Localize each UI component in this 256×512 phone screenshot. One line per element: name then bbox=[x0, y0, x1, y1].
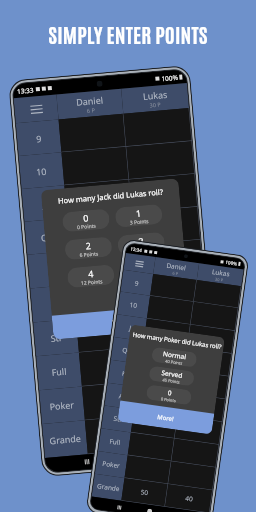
button[interactable]: Qu bbox=[111, 337, 144, 364]
button[interactable]: Grande bbox=[92, 474, 124, 501]
button[interactable]: Home bbox=[129, 454, 137, 462]
button[interactable] bbox=[141, 307, 209, 347]
button[interactable]: 2 bbox=[64, 236, 113, 260]
button[interactable]: Grande bbox=[42, 420, 88, 458]
button[interactable]: Served bbox=[148, 365, 195, 386]
button[interactable] bbox=[137, 364, 184, 393]
staticText: 10 bbox=[129, 300, 138, 310]
button[interactable] bbox=[123, 108, 192, 147]
staticText: 3 Points bbox=[130, 218, 149, 227]
button[interactable] bbox=[190, 302, 238, 331]
button[interactable]: Normal bbox=[151, 347, 198, 368]
button[interactable]: 0 bbox=[146, 384, 192, 405]
button[interactable]: Home bbox=[147, 508, 152, 512]
button[interactable]: Recents bbox=[83, 458, 91, 466]
button[interactable] bbox=[168, 461, 216, 490]
button[interactable]: K bbox=[27, 251, 73, 288]
button[interactable]: Daniel bbox=[153, 257, 199, 280]
staticText: A bbox=[118, 391, 124, 401]
button[interactable] bbox=[178, 393, 225, 422]
button[interactable]: 10 bbox=[19, 152, 64, 189]
button[interactable] bbox=[150, 274, 197, 302]
staticText: Daniel bbox=[76, 93, 103, 108]
button[interactable]: 0 bbox=[62, 208, 110, 232]
button[interactable] bbox=[131, 410, 178, 438]
button[interactable] bbox=[181, 370, 229, 399]
button[interactable]: A bbox=[104, 383, 137, 410]
button[interactable]: Full bbox=[36, 352, 82, 390]
button[interactable] bbox=[187, 325, 235, 354]
button[interactable]: 1 bbox=[114, 204, 163, 228]
button[interactable] bbox=[64, 179, 132, 218]
staticText: J bbox=[42, 198, 46, 210]
button[interactable]: J bbox=[21, 185, 67, 222]
button[interactable]: Qu bbox=[24, 218, 70, 255]
button[interactable]: Menu bbox=[123, 253, 156, 274]
button[interactable]: K bbox=[108, 360, 140, 387]
staticText: 1 bbox=[135, 206, 142, 219]
staticText: 30 P bbox=[215, 277, 224, 283]
staticText: Served bbox=[161, 368, 183, 380]
button[interactable]: Full bbox=[98, 428, 131, 455]
button[interactable] bbox=[129, 174, 198, 212]
button[interactable] bbox=[140, 341, 187, 370]
button[interactable]: A bbox=[30, 285, 76, 322]
staticText: Full bbox=[109, 436, 121, 447]
button[interactable] bbox=[79, 347, 147, 386]
button[interactable]: J bbox=[114, 314, 147, 341]
staticText: 0 Points bbox=[160, 396, 177, 403]
button[interactable]: 9 bbox=[16, 119, 61, 156]
button[interactable]: 5 bbox=[119, 260, 168, 284]
button[interactable] bbox=[147, 296, 194, 325]
staticText: 0 Points bbox=[77, 223, 96, 231]
staticText: J bbox=[129, 323, 132, 332]
button[interactable] bbox=[135, 239, 203, 279]
button[interactable] bbox=[150, 409, 218, 448]
button[interactable]: Lukas bbox=[121, 83, 189, 114]
button[interactable]: Poker bbox=[39, 386, 85, 424]
button[interactable] bbox=[138, 273, 206, 313]
staticText: 4 bbox=[88, 267, 95, 279]
staticText: 100% bbox=[225, 259, 238, 266]
button[interactable] bbox=[70, 245, 138, 285]
button[interactable] bbox=[61, 147, 129, 185]
button[interactable] bbox=[144, 341, 212, 381]
button[interactable]: Menu bbox=[14, 94, 59, 123]
button[interactable] bbox=[128, 432, 174, 461]
button[interactable]: 9 bbox=[120, 270, 153, 296]
button[interactable] bbox=[126, 141, 195, 179]
button[interactable]: More! bbox=[52, 304, 191, 340]
button[interactable] bbox=[134, 387, 181, 416]
button[interactable]: Str bbox=[33, 319, 79, 356]
button[interactable]: More! bbox=[117, 401, 214, 435]
button[interactable] bbox=[144, 318, 190, 347]
button[interactable] bbox=[59, 114, 126, 152]
button[interactable]: 40 bbox=[165, 484, 213, 512]
button[interactable] bbox=[184, 347, 232, 376]
staticText: 6 Points bbox=[79, 250, 99, 259]
staticText: 12:34 bbox=[130, 246, 143, 253]
button[interactable]: Recents bbox=[116, 504, 122, 510]
button[interactable]: Str bbox=[101, 405, 134, 432]
button[interactable]: Poker bbox=[95, 451, 128, 478]
button[interactable] bbox=[76, 313, 144, 352]
button[interactable]: 4 bbox=[67, 264, 115, 288]
button[interactable]: 50 bbox=[121, 478, 168, 507]
button[interactable] bbox=[73, 279, 141, 319]
button[interactable]: Lukas bbox=[197, 263, 244, 286]
button[interactable] bbox=[124, 455, 171, 484]
button[interactable] bbox=[194, 280, 241, 308]
button[interactable]: Daniel bbox=[56, 89, 123, 119]
button[interactable] bbox=[147, 375, 215, 415]
button[interactable] bbox=[85, 415, 153, 454]
button[interactable] bbox=[174, 416, 222, 445]
staticText: 3 bbox=[138, 234, 145, 247]
button[interactable]: 10 bbox=[117, 291, 150, 318]
button[interactable] bbox=[132, 207, 201, 245]
button[interactable] bbox=[67, 212, 135, 251]
staticText: 30 P bbox=[149, 100, 162, 108]
button[interactable] bbox=[82, 381, 150, 420]
button[interactable]: 3 bbox=[117, 232, 165, 256]
button[interactable] bbox=[171, 438, 219, 467]
